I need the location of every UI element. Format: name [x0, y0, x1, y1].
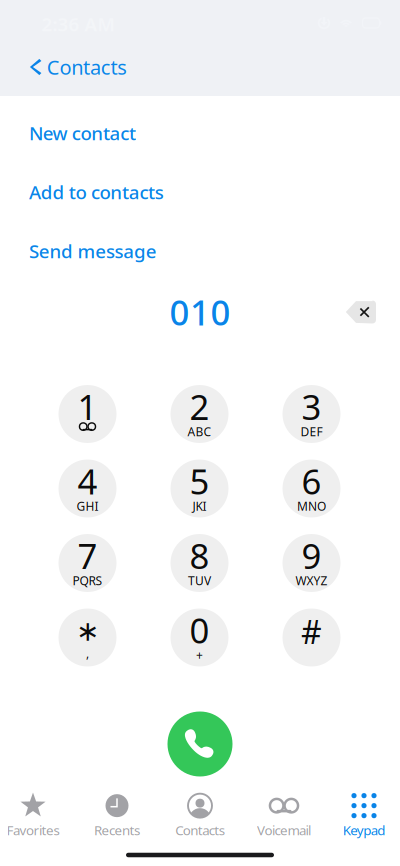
staticText: 5: [189, 458, 209, 504]
staticText: Contacts: [47, 54, 127, 80]
staticText: PQRS: [72, 572, 102, 588]
button[interactable]: Keypad: [325, 792, 400, 840]
staticText: ABC: [187, 423, 211, 439]
staticText: 1: [77, 383, 97, 429]
staticText: ∗: [76, 615, 99, 647]
button[interactable]: Contacts: [13, 44, 143, 90]
staticText: 0: [189, 607, 209, 653]
staticText: Add to contacts: [29, 180, 164, 204]
staticText: Keypad: [343, 821, 385, 839]
staticText: TUV: [188, 572, 211, 588]
button[interactable]: Favorites: [0, 792, 72, 840]
button[interactable]: 2: [170, 385, 228, 443]
button[interactable]: 3: [282, 385, 340, 443]
button[interactable]: Contacts: [161, 792, 239, 840]
staticText: JKI: [192, 498, 206, 514]
staticText: ,: [86, 645, 89, 661]
staticText: 9: [301, 532, 321, 578]
button[interactable]: ∗: [58, 608, 116, 666]
staticText: 3: [301, 383, 321, 429]
button[interactable]: 9: [282, 534, 340, 592]
button[interactable]: 4: [58, 459, 116, 517]
button[interactable]: Call: [167, 711, 232, 776]
button[interactable]: 0: [170, 608, 228, 666]
button[interactable]: 5: [170, 459, 228, 517]
button[interactable]: Send message: [0, 226, 400, 276]
button[interactable]: 6: [282, 459, 340, 517]
staticText: DEF: [300, 423, 322, 439]
staticText: Send message: [29, 239, 157, 263]
staticText: #: [301, 610, 322, 653]
button[interactable]: Voicemail: [245, 792, 323, 840]
button[interactable]: Recents: [78, 792, 156, 840]
button[interactable]: 8: [170, 534, 228, 592]
staticText: 8: [189, 532, 209, 578]
staticText: New contact: [29, 121, 136, 145]
staticText: Voicemail: [257, 821, 311, 839]
button[interactable]: New contact: [0, 108, 400, 158]
staticText: 4: [77, 458, 97, 504]
button[interactable]: 7: [58, 534, 116, 592]
staticText: Recents: [94, 821, 140, 839]
staticText: 7: [77, 532, 97, 578]
staticText: 010: [170, 289, 230, 335]
button[interactable]: Delete: [337, 292, 384, 331]
staticText: Favorites: [6, 821, 59, 839]
button[interactable]: #: [282, 608, 340, 666]
button[interactable]: Add to contacts: [0, 167, 400, 217]
button[interactable]: 1: [58, 385, 116, 443]
staticText: 2: [189, 383, 209, 429]
staticText: GHI: [76, 498, 98, 514]
staticText: MNO: [297, 498, 326, 514]
staticText: WXYZ: [295, 572, 327, 588]
staticText: 6: [301, 458, 321, 504]
staticText: Contacts: [175, 821, 225, 839]
staticText: +: [196, 647, 203, 663]
